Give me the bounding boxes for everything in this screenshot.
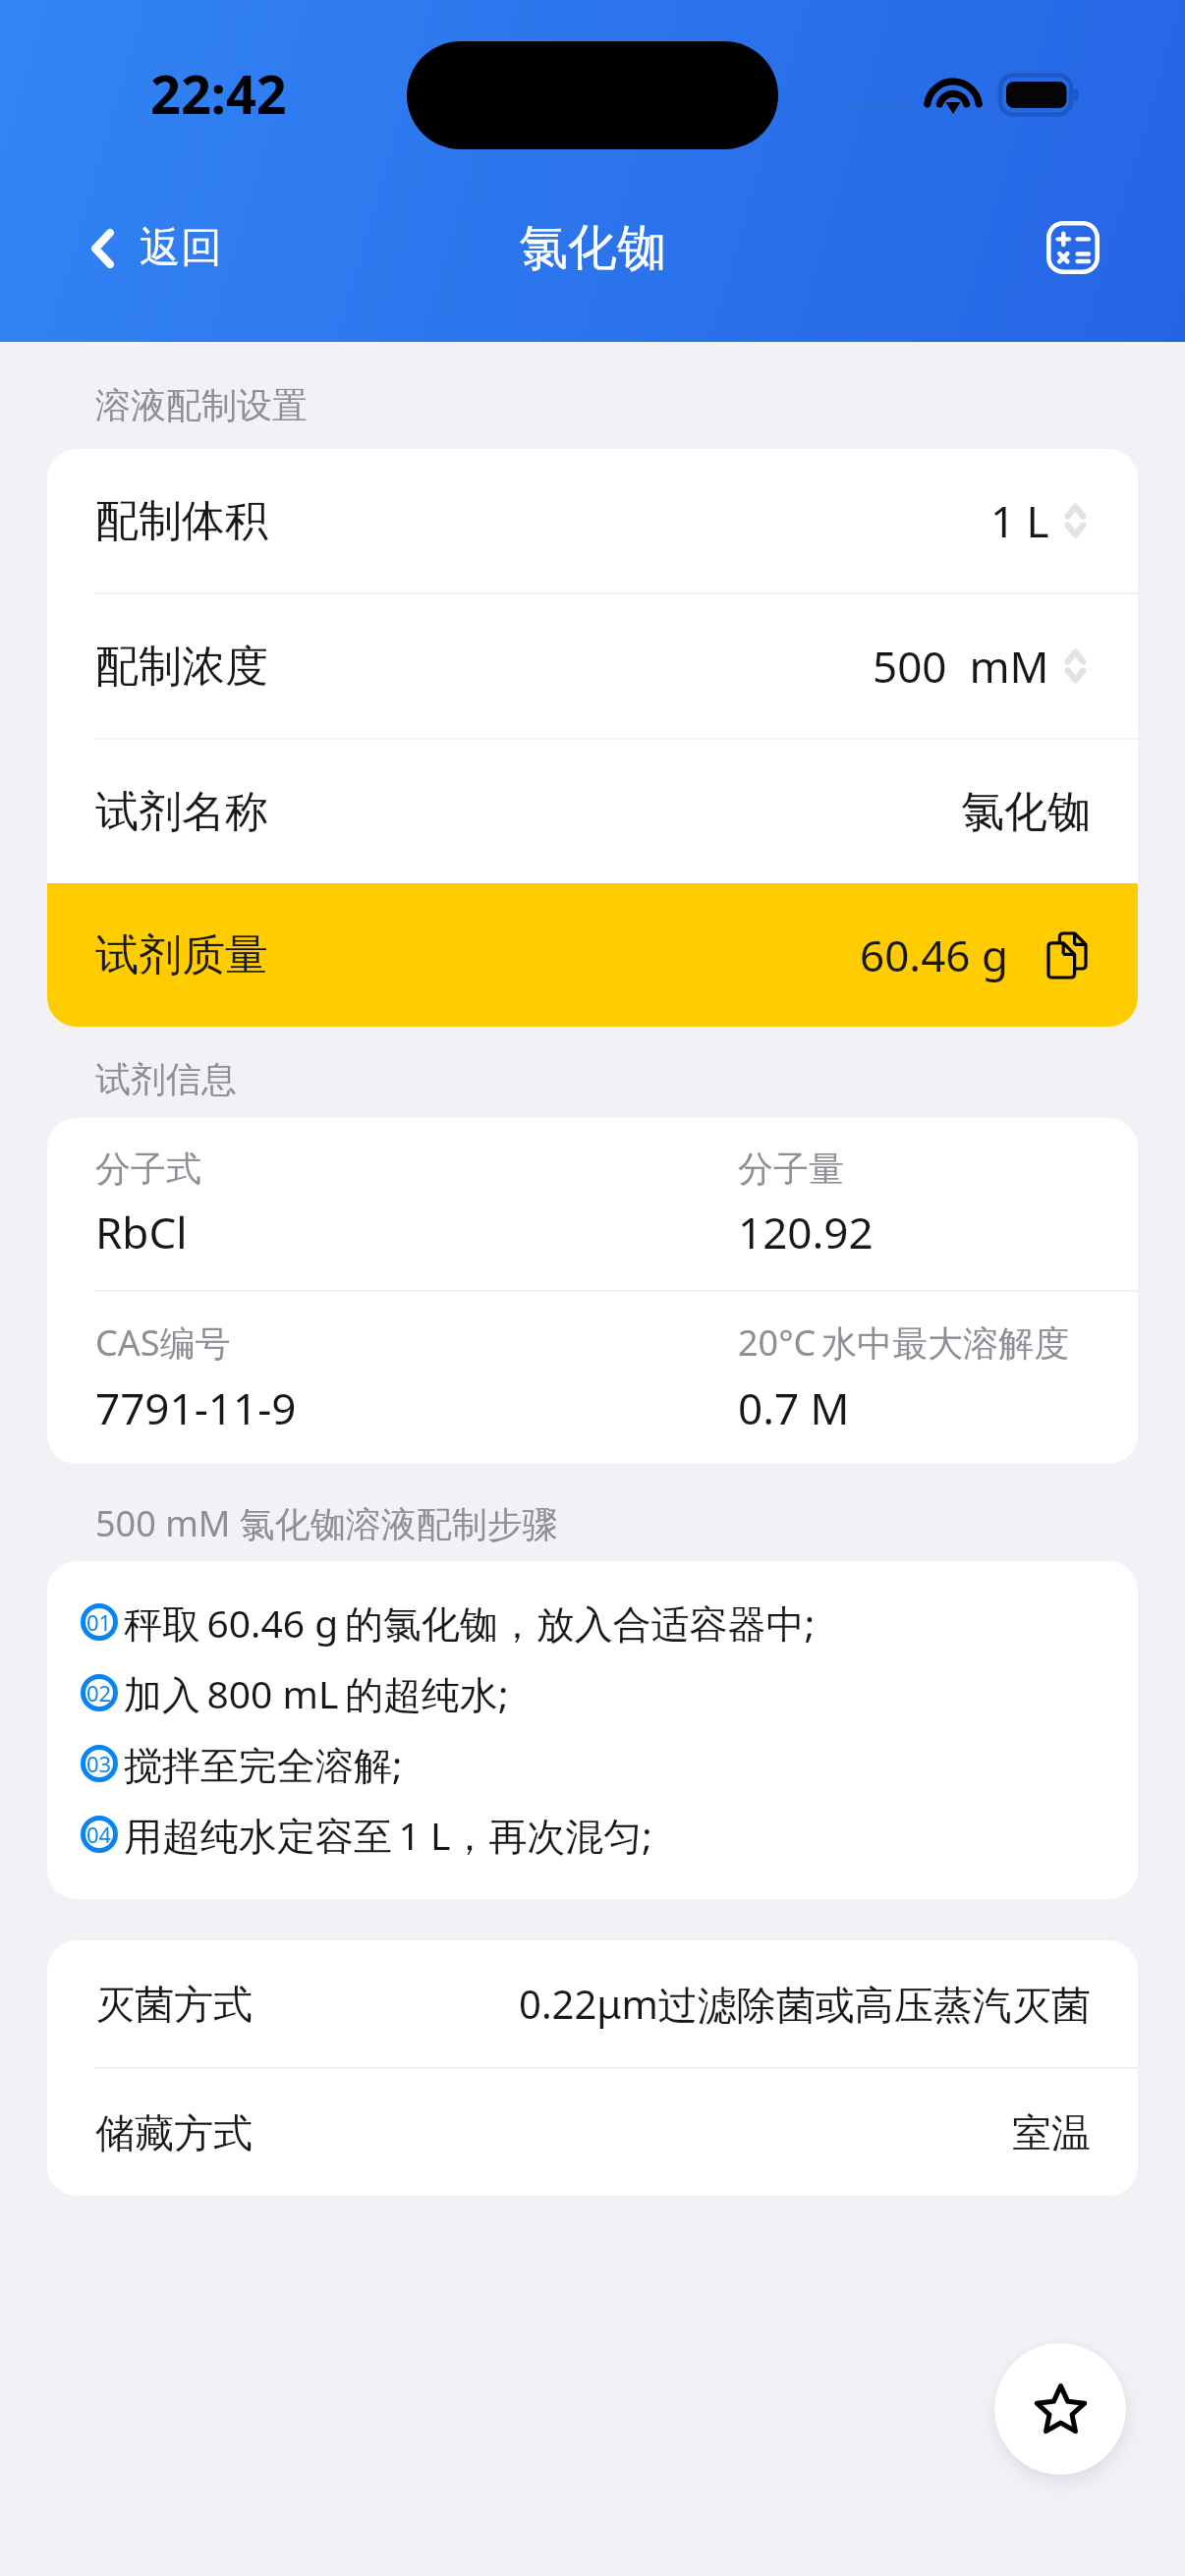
staticText: 秤取 60.46 g 的氯化铷，放入合适容器中; (124, 1596, 816, 1649)
staticText: 500 mM 氯化铷溶液配制步骤 (95, 1499, 558, 1547)
staticText: 0.22μm过滤除菌或高压蒸汽灭菌 (519, 1977, 1091, 2031)
staticText: 03 (86, 1749, 112, 1778)
staticText: 返回 (140, 222, 222, 274)
button[interactable]: 分子式 (47, 1118, 1138, 1290)
button[interactable]: 灭菌方式 (47, 1940, 1138, 2067)
button[interactable]: 配制体积 (47, 449, 1138, 592)
staticText: 7791-11-9 (95, 1378, 297, 1437)
staticText: 储藏方式 (95, 2108, 253, 2157)
button[interactable]: 配制浓度 (47, 594, 1138, 738)
staticText: 配制体积 (95, 494, 268, 548)
button[interactable]: Favorite (994, 2343, 1126, 2475)
staticText: 室温 (1012, 2108, 1091, 2157)
staticText: 氯化铷 (961, 785, 1091, 839)
button[interactable]: 试剂质量 (47, 883, 1138, 1027)
staticText: 溶液配制设置 (95, 383, 308, 427)
button[interactable]: 试剂名称 (47, 740, 1138, 883)
staticText: 02 (86, 1678, 112, 1708)
staticText: 1 L (990, 491, 1049, 550)
staticText: 60.46 g (860, 925, 1008, 984)
staticText: 灭菌方式 (95, 1980, 253, 2029)
button[interactable]: 储藏方式 (47, 2069, 1138, 2196)
staticText: 试剂信息 (95, 1057, 237, 1101)
button[interactable]: Calculator (1028, 202, 1118, 293)
staticText: 试剂质量 (95, 928, 268, 982)
staticText: 22:42 (150, 57, 287, 130)
staticText: 120.92 (738, 1203, 874, 1261)
staticText: CAS编号 (95, 1318, 231, 1367)
staticText: 用超纯水定容至 1 L，再次混匀; (124, 1809, 652, 1861)
staticText: 01 (86, 1607, 112, 1637)
staticText: 500 mM (873, 637, 1049, 696)
staticText: 氯化铷 (519, 217, 666, 279)
button[interactable]: CAS编号 (47, 1292, 1138, 1464)
staticText: 加入 800 mL 的超纯水; (124, 1667, 509, 1719)
staticText: 分子量 (738, 1147, 844, 1191)
button[interactable]: 返回 (0, 204, 252, 292)
staticText: RbCl (95, 1203, 188, 1261)
staticText: 配制浓度 (95, 640, 268, 694)
staticText: 搅拌至完全溶解; (124, 1738, 403, 1790)
staticText: 20°C 水中最大溶解度 (738, 1318, 1070, 1367)
staticText: 试剂名称 (95, 785, 268, 839)
staticText: 04 (86, 1820, 112, 1849)
staticText: 0.7 M (738, 1378, 850, 1437)
staticText: 分子式 (95, 1147, 201, 1191)
